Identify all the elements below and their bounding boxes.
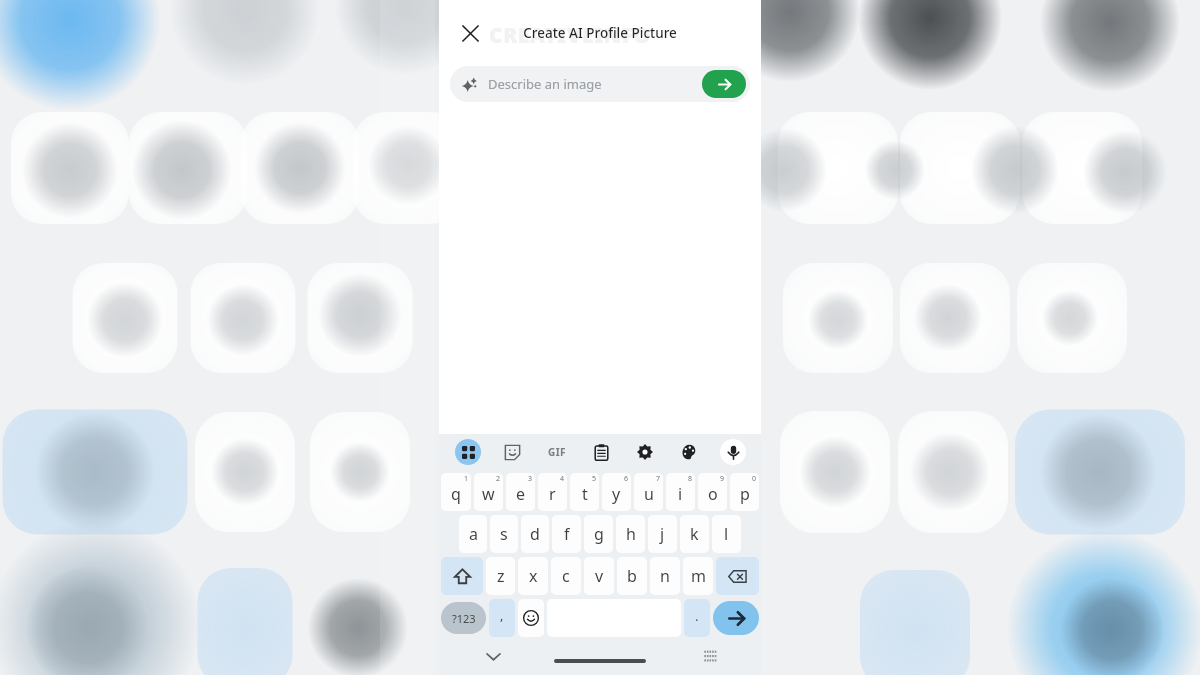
- staticText: 0: [752, 474, 757, 484]
- button[interactable]: x: [518, 557, 548, 595]
- staticText: v: [595, 565, 604, 587]
- staticText: f: [564, 523, 570, 545]
- staticText: o: [708, 483, 718, 505]
- button[interactable]: c: [551, 557, 581, 595]
- button[interactable]: Hide keyboard: [479, 642, 507, 670]
- staticText: s: [500, 523, 508, 545]
- staticText: p: [740, 483, 750, 505]
- staticText: g: [594, 523, 604, 545]
- button[interactable]: .: [684, 599, 710, 637]
- button[interactable]: t: [570, 473, 599, 511]
- button[interactable]: g: [584, 515, 613, 553]
- staticText: e: [516, 483, 526, 505]
- button[interactable]: i: [666, 473, 695, 511]
- button[interactable]: k: [680, 515, 709, 553]
- button[interactable]: Switch keyboard: [697, 643, 723, 669]
- button[interactable]: h: [616, 515, 645, 553]
- staticText: q: [451, 483, 461, 505]
- staticText: j: [660, 523, 665, 545]
- staticText: t: [582, 483, 588, 505]
- staticText: 4: [560, 474, 565, 484]
- button[interactable]: w: [474, 473, 503, 511]
- staticText: c: [562, 565, 570, 587]
- button[interactable]: ,: [489, 599, 515, 637]
- staticText: 6: [624, 474, 629, 484]
- staticText: z: [497, 565, 505, 587]
- button[interactable]: f: [552, 515, 581, 553]
- button[interactable]: m: [683, 557, 713, 595]
- staticText: GIF: [548, 445, 566, 459]
- staticText: m: [691, 565, 706, 587]
- staticText: Describe an image: [488, 75, 602, 93]
- button[interactable]: Close: [453, 16, 487, 50]
- staticText: Create AI Profile Picture: [523, 24, 677, 42]
- button[interactable]: j: [648, 515, 677, 553]
- button[interactable]: Describe an image: [450, 66, 750, 102]
- button[interactable]: l: [712, 515, 741, 553]
- button[interactable]: Voice input: [711, 434, 755, 470]
- staticText: b: [627, 565, 637, 587]
- button[interactable]: o: [698, 473, 727, 511]
- button[interactable]: Themes: [667, 434, 711, 470]
- staticText: .: [695, 607, 699, 625]
- staticText: h: [626, 523, 636, 545]
- button[interactable]: r: [538, 473, 567, 511]
- button[interactable]: y: [602, 473, 631, 511]
- button[interactable]: Toolbox: [445, 434, 490, 470]
- button[interactable]: n: [650, 557, 680, 595]
- button[interactable]: b: [617, 557, 647, 595]
- staticText: ?123: [452, 611, 476, 626]
- staticText: y: [612, 483, 621, 505]
- button[interactable]: Backspace: [716, 557, 759, 595]
- button[interactable]: Enter: [713, 601, 759, 635]
- button[interactable]: a: [459, 515, 487, 553]
- staticText: u: [644, 483, 654, 505]
- button[interactable]: u: [634, 473, 663, 511]
- button[interactable]: p: [730, 473, 759, 511]
- staticText: 8: [688, 474, 693, 484]
- button[interactable]: Stickers: [490, 434, 535, 470]
- button[interactable]: Shift: [441, 557, 483, 595]
- button[interactable]: ?123: [441, 602, 486, 634]
- button[interactable]: q: [441, 473, 471, 511]
- staticText: n: [660, 565, 670, 587]
- staticText: x: [529, 565, 538, 587]
- button[interactable]: Clipboard: [579, 434, 623, 470]
- button[interactable]: Emoji: [518, 599, 544, 637]
- button[interactable]: Generate: [702, 70, 746, 98]
- button[interactable]: Settings: [623, 434, 667, 470]
- staticText: w: [482, 483, 495, 505]
- staticText: r: [549, 483, 556, 505]
- button[interactable]: z: [486, 557, 515, 595]
- staticText: 5: [592, 474, 597, 484]
- staticText: d: [530, 523, 540, 545]
- staticText: 2: [496, 474, 501, 484]
- staticText: l: [724, 523, 729, 545]
- button[interactable]: e: [506, 473, 535, 511]
- staticText: ,: [500, 606, 504, 624]
- button[interactable]: s: [490, 515, 518, 553]
- staticText: 1: [464, 474, 469, 484]
- staticText: 3: [528, 474, 533, 484]
- staticText: 9: [720, 474, 725, 484]
- staticText: k: [690, 523, 699, 545]
- staticText: CREATIVEINFO: [489, 21, 651, 50]
- button[interactable]: GIF: [535, 434, 579, 470]
- staticText: i: [678, 483, 683, 505]
- button[interactable]: d: [521, 515, 549, 553]
- staticText: 7: [656, 474, 661, 484]
- button[interactable]: v: [584, 557, 614, 595]
- staticText: a: [469, 523, 478, 545]
